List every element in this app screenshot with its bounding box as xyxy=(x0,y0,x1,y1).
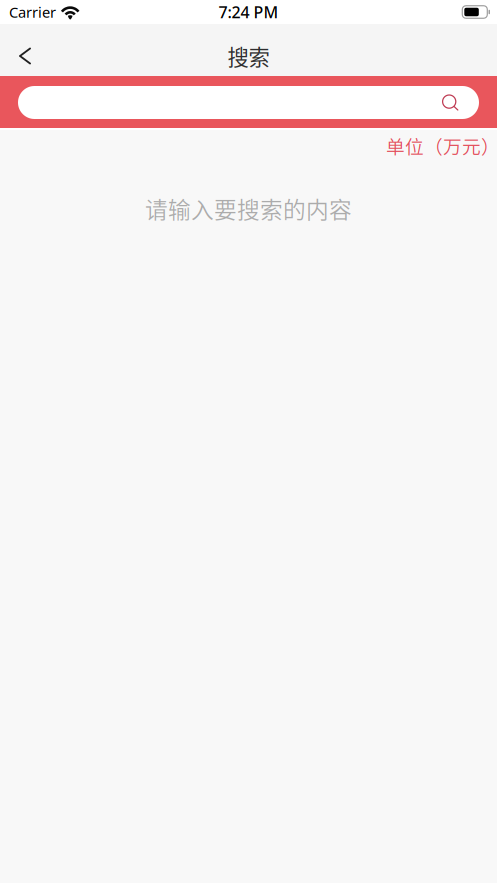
staticText: 搜索 xyxy=(227,41,269,71)
staticText: 请输入要搜索的内容 xyxy=(145,192,352,225)
button[interactable]: Search field xyxy=(18,86,479,119)
staticText: 单位（万元） xyxy=(386,132,497,159)
staticText: 7:24 PM xyxy=(218,1,278,23)
button[interactable]: Back xyxy=(0,36,50,76)
staticText: Carrier xyxy=(9,2,56,22)
